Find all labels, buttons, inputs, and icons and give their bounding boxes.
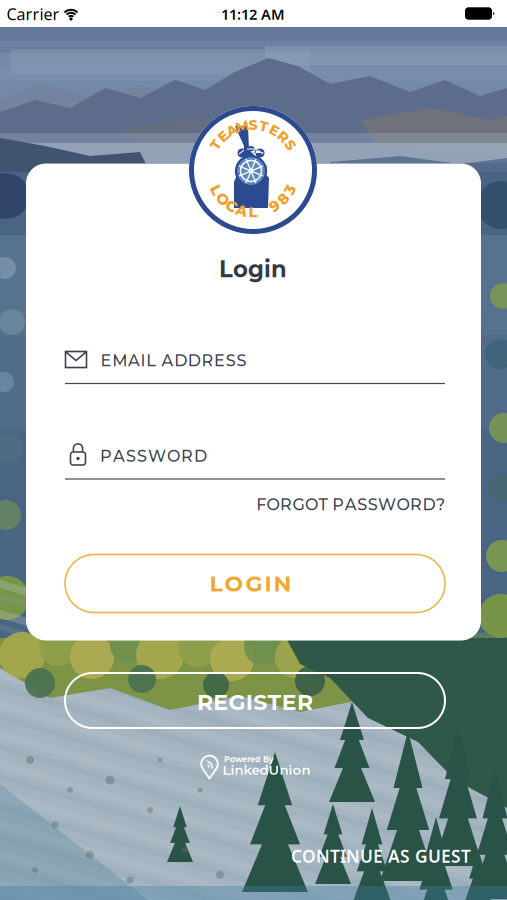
staticText: D bbox=[174, 351, 187, 370]
staticText: O bbox=[305, 495, 318, 514]
staticText: A bbox=[345, 495, 357, 514]
staticText: A bbox=[161, 351, 173, 370]
staticText: E bbox=[270, 122, 279, 139]
staticText: S bbox=[286, 136, 295, 153]
staticText: 9 bbox=[270, 197, 280, 215]
staticText: I bbox=[141, 351, 146, 370]
button[interactable]: F bbox=[256, 495, 445, 514]
staticText: N bbox=[273, 570, 291, 597]
staticText: F bbox=[256, 495, 266, 514]
staticText: R bbox=[181, 446, 193, 466]
button[interactable]: P bbox=[26, 432, 481, 486]
staticText: T bbox=[318, 495, 327, 514]
staticText: Powered By bbox=[224, 755, 274, 764]
staticText: R bbox=[278, 128, 288, 145]
staticText: CONTINUE AS GUEST bbox=[291, 844, 471, 867]
staticText: R bbox=[410, 495, 422, 514]
staticText: S bbox=[253, 689, 267, 715]
staticText: S bbox=[236, 351, 246, 370]
staticText: M bbox=[236, 118, 249, 135]
staticText: L bbox=[146, 351, 156, 370]
staticText: Carrier bbox=[6, 3, 59, 25]
staticText: D bbox=[422, 495, 435, 514]
button[interactable]: E bbox=[26, 338, 481, 390]
staticText bbox=[262, 201, 266, 219]
staticText: I bbox=[246, 689, 253, 715]
staticText: E bbox=[282, 689, 297, 715]
staticText: C bbox=[226, 197, 237, 215]
staticText: S bbox=[248, 116, 257, 134]
staticText: E bbox=[101, 351, 112, 370]
staticText: W bbox=[378, 495, 396, 514]
staticText: G bbox=[292, 495, 304, 514]
staticText: R bbox=[280, 495, 292, 514]
staticText: O bbox=[224, 570, 243, 597]
staticText: P bbox=[100, 446, 112, 466]
staticText: G bbox=[245, 570, 262, 597]
staticText: S bbox=[126, 446, 136, 466]
staticText: Login bbox=[219, 255, 287, 283]
staticText: ? bbox=[436, 495, 445, 514]
staticText: D bbox=[194, 446, 207, 466]
staticText: L bbox=[209, 570, 222, 597]
staticText: E bbox=[213, 689, 228, 715]
staticText: M bbox=[112, 351, 127, 370]
staticText bbox=[328, 495, 332, 514]
staticText: LinkedUnion bbox=[222, 762, 310, 778]
staticText: O bbox=[267, 495, 280, 514]
staticText: T bbox=[259, 118, 268, 135]
button[interactable]: L bbox=[65, 554, 445, 612]
staticText: R bbox=[297, 689, 313, 715]
staticText: S bbox=[137, 446, 147, 466]
staticText: O bbox=[167, 446, 180, 466]
button[interactable]: CONTINUE AS GUEST bbox=[291, 844, 471, 867]
staticText: E bbox=[218, 128, 227, 145]
staticText: L bbox=[211, 181, 220, 199]
staticText: A bbox=[226, 122, 237, 139]
staticText: E bbox=[214, 351, 225, 370]
staticText: L bbox=[248, 203, 257, 221]
button[interactable]: R bbox=[65, 673, 445, 728]
staticText: R bbox=[201, 351, 213, 370]
staticText: I bbox=[264, 570, 271, 597]
staticText: 11:12 AM bbox=[221, 4, 285, 24]
staticText: O bbox=[216, 190, 228, 208]
staticText: P bbox=[332, 495, 344, 514]
staticText: R bbox=[197, 689, 213, 715]
staticText: G bbox=[228, 689, 245, 715]
staticText: S bbox=[226, 351, 236, 370]
staticText: D bbox=[188, 351, 201, 370]
staticText: S bbox=[357, 495, 367, 514]
staticText: T bbox=[211, 136, 220, 153]
staticText: 3 bbox=[286, 181, 295, 199]
staticText: A bbox=[113, 446, 125, 466]
staticText: S bbox=[368, 495, 378, 514]
staticText: A bbox=[128, 351, 140, 370]
staticText: 8 bbox=[278, 190, 288, 208]
staticText: T bbox=[267, 689, 281, 715]
staticText: O bbox=[396, 495, 409, 514]
staticText: W bbox=[148, 446, 166, 466]
staticText: A bbox=[236, 201, 248, 219]
